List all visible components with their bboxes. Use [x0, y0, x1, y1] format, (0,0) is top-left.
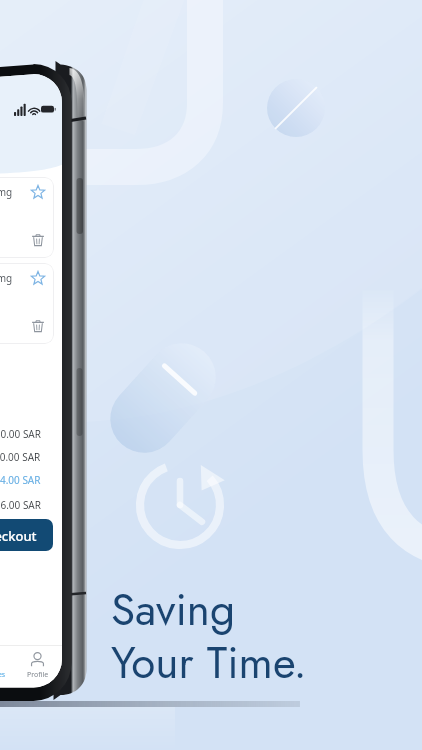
staticText: 350.00 SAR	[0, 427, 41, 441]
staticText: Medicines	[0, 670, 6, 680]
staticText: Checkout	[0, 527, 37, 545]
staticText: -14.00 SAR	[0, 473, 41, 487]
staticText: Profile	[27, 670, 49, 680]
button[interactable]: Favourite	[31, 185, 45, 199]
staticText: 500 mg	[0, 185, 13, 199]
staticText: 500 mg	[0, 271, 13, 285]
staticText: 356.00 SAR	[0, 498, 41, 512]
button[interactable]: Profile	[13, 646, 62, 685]
button[interactable]: Favourite	[31, 271, 45, 285]
button[interactable]: Delete	[31, 233, 45, 247]
button[interactable]: Medicines	[0, 646, 13, 685]
button[interactable]: 500 mg	[0, 263, 54, 344]
button[interactable]: Checkout	[0, 519, 53, 551]
button[interactable]: Delete	[31, 319, 45, 333]
staticText: Saving Your Time.	[111, 578, 307, 694]
button[interactable]: 500 mg	[0, 177, 54, 258]
staticText: 20.00 SAR	[0, 450, 41, 464]
